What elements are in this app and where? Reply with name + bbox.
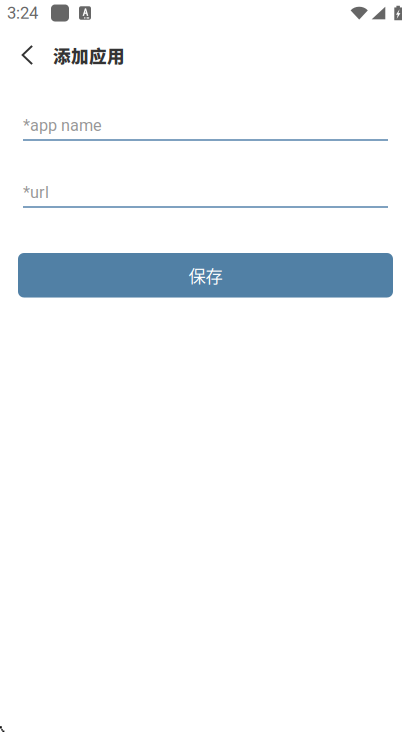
staticText: *url (23, 183, 49, 202)
button[interactable]: 保存 (18, 253, 393, 297)
staticText: 保存 (188, 263, 222, 288)
staticText: 3:24 (7, 3, 38, 23)
button[interactable]: Back (11, 37, 43, 73)
button[interactable]: *app name (23, 112, 388, 141)
staticText: *app name (23, 116, 102, 135)
button[interactable]: *url (23, 179, 388, 208)
staticText: 添加应用 (53, 42, 125, 68)
